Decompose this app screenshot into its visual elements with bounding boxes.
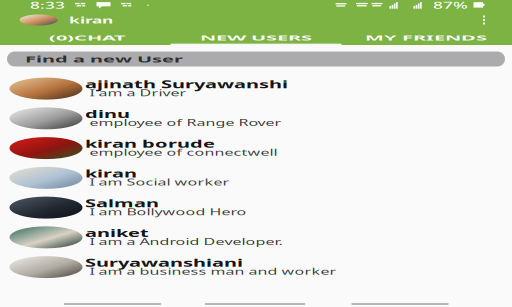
staticText: Find a new User xyxy=(25,46,183,72)
staticText: dinu xyxy=(85,100,130,127)
staticText: I am Social worker xyxy=(89,172,229,193)
staticText: 87% xyxy=(433,0,468,17)
staticText: kiran xyxy=(85,160,137,187)
staticText: Salman xyxy=(85,190,159,216)
staticText: 8:33 xyxy=(30,0,65,17)
staticText: I am a Driver xyxy=(89,83,186,104)
staticText: ajinath Suryawanshi xyxy=(85,71,288,97)
staticText: I am a business man and worker xyxy=(89,261,336,282)
staticText: kiran xyxy=(69,8,113,31)
staticText: employee of connectwell xyxy=(89,142,277,163)
staticText: (0)CHAT xyxy=(49,24,126,51)
staticText: I am Bollywood Hero xyxy=(89,202,246,223)
staticText: MY FRIENDS xyxy=(365,24,487,51)
staticText: kiran borude xyxy=(85,130,215,157)
staticText: aniket xyxy=(85,219,149,246)
staticText: employee of Range Rover xyxy=(89,112,281,133)
staticText: Suryawanshiani xyxy=(85,249,243,276)
staticText: NEW USERS xyxy=(200,24,312,51)
staticText: I am a Android Developer. xyxy=(89,231,282,252)
